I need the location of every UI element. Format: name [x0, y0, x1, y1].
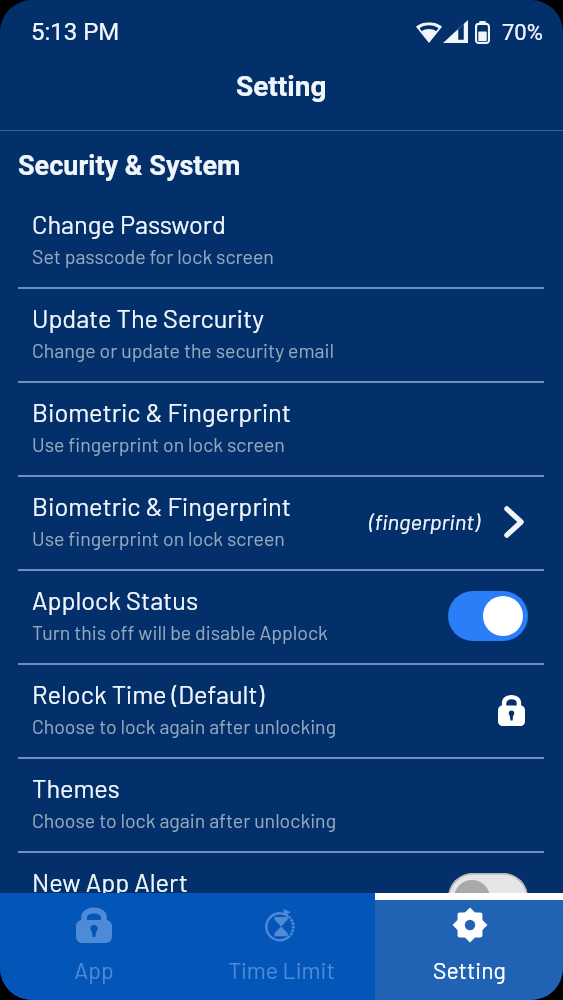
other: Battery — [475, 21, 490, 44]
button[interactable]: Time Limit — [187, 893, 375, 1000]
staticText: App — [74, 956, 114, 984]
button[interactable]: Biometric & Fingerprint — [0, 477, 563, 571]
staticText: Turn this off will be disable Applock — [32, 620, 328, 643]
staticText: Change Password — [32, 209, 226, 239]
button[interactable]: Update The Sercurity — [0, 289, 563, 383]
staticText: Update The Sercurity — [32, 303, 265, 333]
staticText: Time Limit — [228, 956, 335, 984]
other: Wi-Fi — [416, 21, 442, 43]
button[interactable]: Relock Time (Default) — [0, 665, 563, 759]
staticText: Setting — [236, 70, 327, 103]
staticText: Receive alert on new app install — [32, 902, 296, 925]
button[interactable]: App — [0, 893, 187, 1000]
staticText: Set passcode for lock screen — [32, 244, 274, 267]
button[interactable]: New App Alert — [0, 853, 563, 947]
staticText: 5:13 PM — [31, 18, 120, 46]
staticText: Choose to lock again after unlocking — [32, 808, 337, 831]
staticText: New App Alert — [32, 867, 188, 897]
other: Signal — [443, 20, 468, 43]
button[interactable]: Toggle off — [448, 873, 528, 923]
staticText: Themes — [32, 773, 120, 803]
button[interactable]: Relock time — [494, 693, 528, 727]
staticText: Biometric & Fingerprint — [32, 491, 292, 521]
button[interactable]: Setting — [375, 893, 563, 1000]
staticText: Change or update the security email — [32, 338, 335, 361]
staticText: Use fingerprint on lock screen — [32, 432, 285, 455]
button[interactable]: Biometric & Fingerprint — [0, 383, 563, 477]
staticText: Biometric & Fingerprint — [32, 397, 292, 427]
button[interactable]: Change Password — [0, 195, 563, 289]
staticText: Use fingerprint on lock screen — [32, 526, 285, 549]
staticText: (fingerprint) — [369, 508, 480, 534]
button[interactable]: Themes — [0, 759, 563, 853]
staticText: Choose to lock again after unlocking — [32, 714, 337, 737]
staticText: 70% — [502, 20, 543, 46]
button[interactable]: Toggle on — [448, 591, 528, 641]
button[interactable]: Applock Status — [0, 571, 563, 665]
staticText: Relock Time (Default) — [32, 679, 265, 709]
staticText: Setting — [433, 956, 506, 984]
staticText: Security & System — [18, 150, 241, 182]
button[interactable]: (fingerprint) — [369, 506, 524, 538]
staticText: Applock Status — [32, 585, 199, 615]
other: Open fingerprint settings — [504, 506, 524, 538]
